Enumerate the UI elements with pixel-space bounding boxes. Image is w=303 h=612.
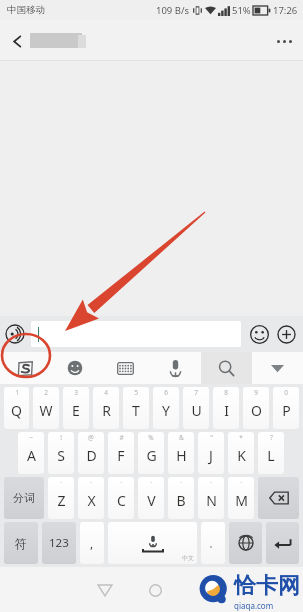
button[interactable]: 0 bbox=[273, 387, 299, 429]
button[interactable]: Search bbox=[201, 352, 252, 384]
staticText: 109 B/s bbox=[156, 4, 190, 17]
button[interactable]: Back bbox=[0, 24, 34, 58]
button[interactable]: More bbox=[274, 322, 298, 346]
staticText: 5 bbox=[134, 388, 138, 397]
staticText: * bbox=[239, 433, 243, 442]
staticText: C bbox=[117, 491, 126, 510]
staticText: X bbox=[87, 491, 96, 510]
button[interactable]: @ bbox=[78, 432, 104, 474]
staticText: R bbox=[102, 401, 111, 420]
staticText: 符 bbox=[15, 536, 27, 551]
button[interactable]: Back bbox=[90, 575, 120, 605]
button[interactable]: More options bbox=[265, 22, 303, 60]
staticText: 0 bbox=[284, 388, 288, 397]
staticText: J bbox=[209, 446, 213, 465]
button[interactable]: , bbox=[80, 522, 104, 564]
staticText: & bbox=[179, 433, 184, 442]
staticText: 6 bbox=[164, 388, 168, 397]
staticText: 9 bbox=[254, 388, 258, 397]
button[interactable]: ! bbox=[48, 432, 74, 474]
staticText: # bbox=[119, 433, 124, 442]
button[interactable]: 123 bbox=[42, 522, 76, 564]
button[interactable]: Voice message bbox=[4, 323, 26, 345]
staticText: · bbox=[150, 478, 152, 487]
button[interactable]: Sogou input bbox=[0, 352, 50, 384]
staticText: · bbox=[120, 478, 122, 487]
staticText: V bbox=[147, 491, 156, 510]
staticText: P bbox=[282, 401, 291, 420]
staticText: 7 bbox=[194, 388, 198, 397]
staticText: U bbox=[191, 401, 202, 420]
button[interactable]: 5 bbox=[123, 387, 149, 429]
button[interactable]: Space bbox=[108, 522, 197, 564]
button[interactable]: Enter bbox=[266, 522, 299, 564]
staticText: Q bbox=[11, 401, 22, 420]
staticText: T bbox=[132, 401, 140, 420]
button[interactable]: 1 bbox=[4, 387, 29, 429]
staticText: L bbox=[267, 446, 275, 465]
staticText: W bbox=[39, 401, 53, 420]
staticText: 中文 bbox=[182, 554, 194, 562]
staticText: 恰卡网 bbox=[234, 572, 300, 600]
button[interactable]: ~ bbox=[18, 432, 44, 474]
staticText: M bbox=[235, 491, 248, 510]
button[interactable]: 4 bbox=[93, 387, 119, 429]
staticText: 分词 bbox=[13, 491, 35, 505]
button[interactable]: 6 bbox=[153, 387, 179, 429]
staticText: 1 bbox=[15, 388, 19, 397]
staticText: H bbox=[176, 446, 187, 465]
button[interactable]: Keyboard bbox=[100, 352, 150, 384]
staticText: · bbox=[180, 478, 182, 487]
button[interactable]: & bbox=[168, 432, 194, 474]
staticText: 3 bbox=[74, 388, 78, 397]
staticText: @ bbox=[88, 433, 94, 442]
button[interactable]: Home bbox=[140, 575, 170, 605]
button[interactable]: 7 bbox=[183, 387, 209, 429]
staticText: Z bbox=[57, 491, 66, 510]
button[interactable]: 分词 bbox=[4, 477, 44, 519]
button[interactable]: ? bbox=[258, 432, 284, 474]
button[interactable]: · bbox=[78, 477, 104, 519]
button[interactable]: 9 bbox=[243, 387, 269, 429]
button[interactable]: Backspace bbox=[258, 477, 299, 519]
staticText: · bbox=[240, 478, 242, 487]
staticText: B bbox=[176, 491, 186, 510]
button[interactable]: Voice input bbox=[150, 352, 201, 384]
staticText: ? bbox=[270, 433, 273, 442]
staticText: 2 bbox=[44, 388, 48, 397]
button[interactable]: Switch language bbox=[229, 522, 262, 564]
button[interactable]: · bbox=[228, 477, 254, 519]
button[interactable]: · bbox=[138, 477, 164, 519]
button[interactable]: " bbox=[198, 432, 224, 474]
staticText: 17:26 bbox=[273, 4, 298, 17]
staticText: 中国移动 bbox=[7, 4, 45, 16]
staticText: · bbox=[90, 478, 92, 487]
staticText: , bbox=[90, 535, 94, 551]
staticText: S bbox=[57, 446, 65, 465]
staticText: 4 bbox=[104, 388, 108, 397]
button[interactable]: 3 bbox=[63, 387, 89, 429]
staticText: qiaqa.com bbox=[234, 600, 274, 611]
button[interactable] bbox=[31, 321, 241, 347]
button[interactable]: · bbox=[48, 477, 74, 519]
button[interactable]: Stickers bbox=[50, 352, 100, 384]
button[interactable]: Emoji bbox=[247, 322, 271, 346]
staticText: D bbox=[86, 446, 97, 465]
button[interactable]: # bbox=[108, 432, 134, 474]
button[interactable]: % bbox=[138, 432, 164, 474]
button[interactable]: · bbox=[198, 477, 224, 519]
button[interactable]: 2 bbox=[33, 387, 59, 429]
staticText: G bbox=[146, 446, 157, 465]
button[interactable]: Collapse keyboard bbox=[252, 352, 303, 384]
staticText: 123 bbox=[49, 535, 69, 551]
staticText: ! bbox=[60, 433, 62, 442]
button[interactable]: * bbox=[228, 432, 254, 474]
button[interactable]: 。 bbox=[201, 522, 225, 564]
button[interactable]: 8 bbox=[213, 387, 239, 429]
staticText: % bbox=[148, 433, 154, 442]
staticText: O bbox=[251, 401, 262, 420]
staticText: " bbox=[210, 433, 213, 442]
button[interactable]: · bbox=[168, 477, 194, 519]
button[interactable]: · bbox=[108, 477, 134, 519]
button[interactable]: 符 bbox=[4, 522, 38, 564]
